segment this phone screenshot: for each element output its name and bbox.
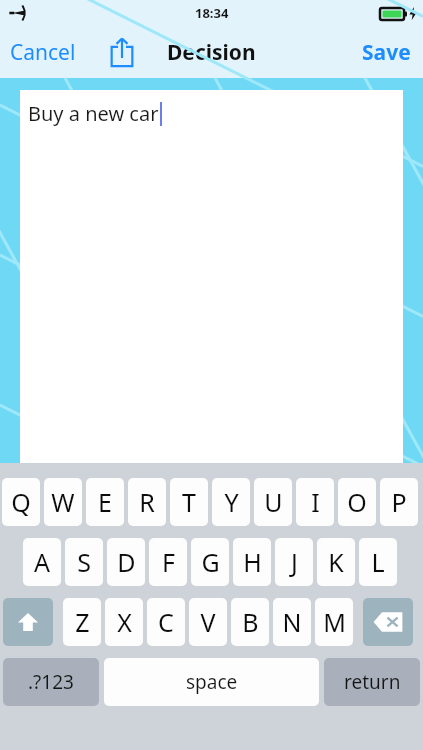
staticText: B [242,605,259,639]
staticText: .?123 [28,669,74,695]
staticText: G [201,545,220,579]
staticText: Decision [167,38,256,67]
staticText: Y [224,485,239,519]
button[interactable]: D [107,538,145,586]
button[interactable]: Share [100,30,144,74]
staticText: S [77,545,91,579]
staticText: C [158,605,174,639]
staticText: O [347,485,367,519]
staticText: H [243,545,262,579]
button[interactable]: G [191,538,229,586]
button[interactable]: Shift [3,598,53,646]
staticText: N [282,605,302,639]
staticText: T [182,485,196,519]
button[interactable]: C [147,598,185,646]
button[interactable]: space [104,658,319,706]
staticText: Q [11,485,31,519]
button[interactable]: Q [2,478,40,526]
button[interactable]: M [315,598,353,646]
staticText: E [98,485,112,519]
staticText: space [186,669,238,695]
staticText: R [139,485,155,519]
staticText: D [117,545,136,579]
button[interactable]: .?123 [3,658,99,706]
staticText: Save [362,38,411,67]
staticText: W [51,485,75,519]
button[interactable]: F [149,538,187,586]
staticText: P [391,485,407,519]
button[interactable]: W [44,478,82,526]
staticText: U [264,485,283,519]
staticText: J [291,545,298,579]
button[interactable]: A [23,538,61,586]
button[interactable]: E [86,478,124,526]
button[interactable]: return [324,658,420,706]
staticText: M [323,605,346,639]
button[interactable]: N [273,598,311,646]
button[interactable]: B [231,598,269,646]
button[interactable]: V [189,598,227,646]
staticText: Z [75,605,90,639]
staticText: L [371,545,385,579]
button[interactable]: Z [63,598,101,646]
button[interactable]: L [359,538,397,586]
button[interactable]: J [275,538,313,586]
button[interactable]: O [338,478,376,526]
button[interactable]: Backspace [363,598,413,646]
staticText: return [344,669,401,695]
staticText: K [328,545,344,579]
button[interactable]: X [105,598,143,646]
button[interactable]: Save [362,26,411,78]
button[interactable]: I [296,478,334,526]
staticText: Cancel [10,38,76,67]
button[interactable]: T [170,478,208,526]
button[interactable]: Cancel [10,26,76,78]
button[interactable]: U [254,478,292,526]
staticText: X [117,605,132,639]
staticText: I [311,485,320,519]
staticText: Buy a new car [28,100,159,127]
button[interactable]: R [128,478,166,526]
button[interactable]: K [317,538,355,586]
button[interactable]: Y [212,478,250,526]
staticText: F [162,545,175,579]
button[interactable]: H [233,538,271,586]
button[interactable]: Buy a new car [20,90,403,463]
staticText: A [34,545,50,579]
button[interactable]: S [65,538,103,586]
staticText: V [200,605,216,639]
button[interactable]: P [380,478,418,526]
staticText: 18:34 [195,4,229,22]
